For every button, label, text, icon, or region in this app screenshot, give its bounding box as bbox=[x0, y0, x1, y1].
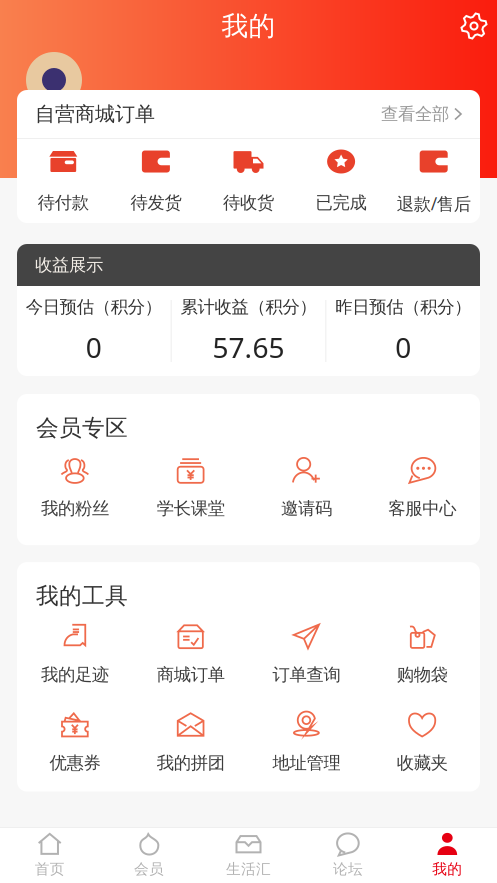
staticText: 生活汇 bbox=[226, 860, 271, 878]
staticText: 地址管理 bbox=[272, 752, 340, 774]
button[interactable]: 地址管理 bbox=[248, 711, 364, 774]
staticText: 学长课堂 bbox=[157, 498, 225, 519]
staticText: 我的 bbox=[432, 860, 462, 878]
staticText: 优惠券 bbox=[49, 752, 100, 774]
staticText: 自营商城订单 bbox=[35, 102, 155, 126]
staticText: 商城订单 bbox=[157, 664, 225, 685]
staticText: 退款/售后 bbox=[397, 192, 471, 215]
staticText: 我的 bbox=[221, 10, 275, 42]
staticText: 客服中心 bbox=[388, 498, 456, 519]
button[interactable]: 会员 bbox=[99, 833, 199, 878]
staticText: 待付款 bbox=[38, 192, 89, 213]
button[interactable]: 退款/售后 bbox=[387, 139, 480, 223]
button[interactable]: 我的粉丝 bbox=[17, 457, 133, 519]
button[interactable]: 优惠券 bbox=[17, 711, 133, 774]
button[interactable]: 待收货 bbox=[202, 139, 295, 223]
button[interactable]: 订单查询 bbox=[248, 623, 364, 685]
staticText: 我的粉丝 bbox=[41, 498, 109, 519]
staticText: 我的足迹 bbox=[41, 664, 109, 685]
button[interactable]: 待发货 bbox=[110, 139, 202, 223]
button[interactable]: 客服中心 bbox=[364, 457, 480, 519]
button[interactable]: 首页 bbox=[0, 833, 99, 878]
button[interactable]: 收藏夹 bbox=[364, 711, 480, 774]
staticText: 购物袋 bbox=[397, 664, 448, 685]
button[interactable]: 商城订单 bbox=[133, 623, 249, 685]
button[interactable]: 邀请码 bbox=[248, 457, 364, 519]
button[interactable]: 我的 bbox=[398, 833, 497, 878]
staticText: 昨日预估（积分） bbox=[335, 296, 471, 318]
button[interactable]: 生活汇 bbox=[199, 833, 298, 878]
button[interactable]: 论坛 bbox=[298, 833, 398, 878]
button[interactable]: 我的拼团 bbox=[133, 711, 249, 774]
staticText: 累计收益（积分） bbox=[180, 296, 316, 318]
staticText: 收益展示 bbox=[35, 254, 103, 276]
button[interactable]: 我的足迹 bbox=[17, 623, 133, 685]
staticText: 会员专区 bbox=[36, 414, 128, 442]
staticText: 查看全部 bbox=[381, 103, 449, 125]
button[interactable]: Settings bbox=[451, 3, 497, 49]
staticText: 邀请码 bbox=[281, 498, 332, 519]
staticText: 我的拼团 bbox=[157, 752, 225, 774]
staticText: 0 bbox=[86, 329, 102, 366]
staticText: 待发货 bbox=[130, 192, 181, 213]
staticText: 今日预估（积分） bbox=[26, 296, 162, 318]
button[interactable]: 已完成 bbox=[295, 139, 387, 223]
staticText: 首页 bbox=[35, 860, 65, 878]
staticText: 论坛 bbox=[333, 860, 363, 878]
staticText: 会员 bbox=[134, 860, 164, 878]
staticText: 我的工具 bbox=[36, 582, 128, 610]
staticText: 0 bbox=[395, 329, 411, 366]
button[interactable]: 查看全部 bbox=[381, 103, 462, 125]
button[interactable]: 购物袋 bbox=[364, 623, 480, 685]
staticText: 收藏夹 bbox=[397, 752, 448, 774]
button[interactable]: 学长课堂 bbox=[133, 457, 249, 519]
staticText: 57.65 bbox=[212, 329, 284, 366]
staticText: 待收货 bbox=[223, 192, 274, 213]
staticText: 订单查询 bbox=[272, 664, 340, 685]
staticText: 已完成 bbox=[316, 192, 367, 213]
button[interactable]: 待付款 bbox=[17, 139, 110, 223]
